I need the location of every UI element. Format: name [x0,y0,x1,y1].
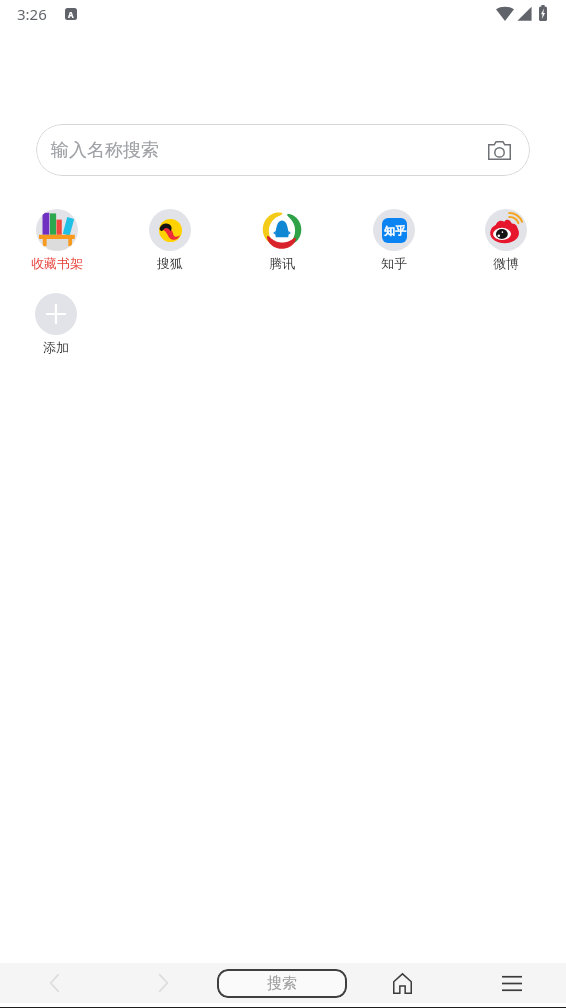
staticText: 收藏书架 [31,255,83,271]
button[interactable]: Camera search [483,134,515,166]
staticText: A [68,9,74,20]
button[interactable]: Menu [488,963,536,1003]
staticText: 微博 [493,255,519,271]
button[interactable]: Forward [139,963,187,1003]
button[interactable]: Back [30,963,78,1003]
staticText: 添加 [43,339,69,355]
button[interactable]: 搜狐 [113,209,226,271]
button[interactable]: 腾讯 [226,209,338,271]
staticText: 搜索 [267,974,297,993]
staticText: 腾讯 [269,255,295,271]
button[interactable]: Home [378,963,426,1003]
staticText: 知乎 [384,224,406,238]
button[interactable]: 添加 [0,293,112,355]
button[interactable]: 微博 [450,209,562,271]
staticText: 知乎 [381,255,407,271]
button[interactable]: 知乎 [338,209,450,271]
button[interactable]: 搜索 [217,969,347,998]
staticText: 输入名称搜索 [51,139,159,162]
staticText: 搜狐 [157,255,183,271]
button[interactable]: 收藏书架 [0,209,113,271]
staticText: 3:26 [17,4,47,24]
button[interactable]: 输入名称搜索 [36,124,530,176]
